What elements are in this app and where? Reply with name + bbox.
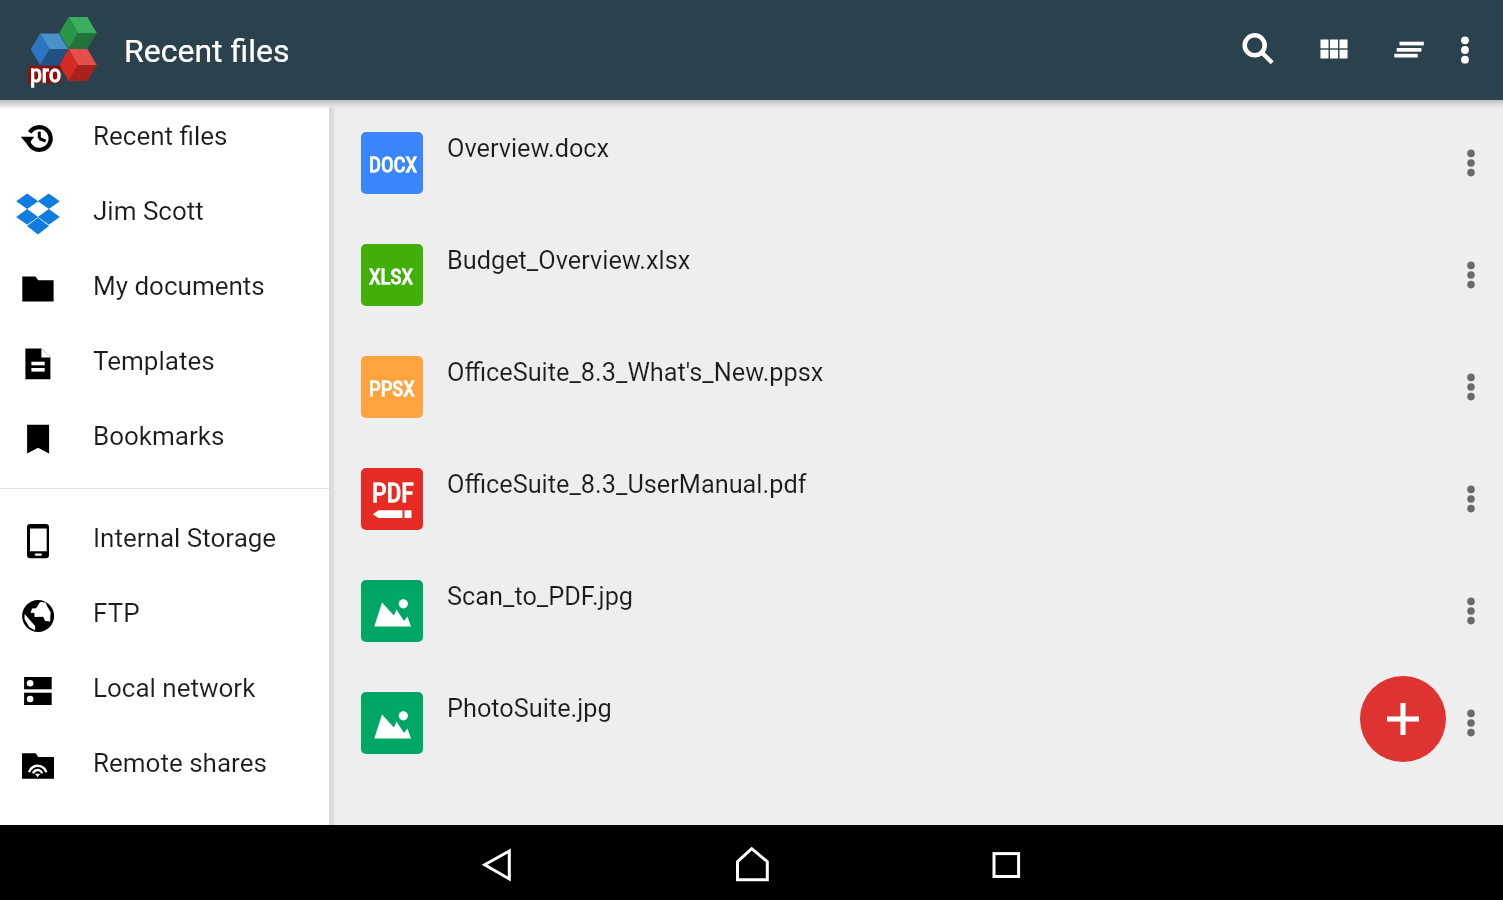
staticText: OfficeSuite_8.3_What's_New.ppsx (447, 358, 824, 388)
staticText: XLSX (369, 265, 414, 290)
staticText: Remote shares (93, 748, 267, 778)
staticText: Scan_to_PDF.jpg (447, 582, 634, 612)
staticText: Internal Storage (93, 523, 277, 553)
button[interactable]: Recent files (0, 101, 329, 176)
staticText: Budget_Overview.xlsx (447, 246, 691, 276)
button[interactable]: OfficeSuite Pro (26, 13, 100, 87)
button[interactable]: More options (1441, 581, 1501, 641)
button[interactable]: Back (467, 825, 527, 885)
button[interactable]: More options (1441, 357, 1501, 417)
staticText: Recent files (93, 121, 228, 151)
button[interactable]: More options (1441, 245, 1501, 305)
button[interactable]: PPSX (329, 331, 1503, 443)
button[interactable]: Scan_to_PDF.jpg (329, 555, 1503, 667)
staticText: Overview.docx (447, 134, 610, 164)
button[interactable]: Recent apps (976, 834, 1036, 894)
staticText: Local network (93, 673, 256, 703)
staticText: pro (30, 60, 61, 88)
button[interactable]: PhotoSuite.jpg (329, 667, 1503, 779)
button[interactable]: More options (1441, 693, 1501, 753)
staticText: PDF (372, 478, 414, 508)
button[interactable]: Templates (0, 326, 329, 401)
button[interactable]: My documents (0, 251, 329, 326)
button[interactable]: Create new file (1360, 676, 1446, 762)
button[interactable]: More options (1441, 469, 1501, 529)
staticText: Bookmarks (93, 421, 225, 451)
button[interactable]: Search (1225, 16, 1285, 76)
button[interactable]: More options (1435, 20, 1495, 80)
button[interactable]: Local network (0, 653, 329, 728)
button[interactable]: Home (722, 825, 782, 885)
button[interactable]: Bookmarks (0, 401, 329, 476)
staticText: Jim Scott (93, 196, 204, 226)
button[interactable]: DOCX (329, 107, 1503, 219)
staticText: Templates (93, 346, 215, 376)
staticText: DOCX (369, 153, 418, 178)
button[interactable]: Jim Scott (0, 176, 329, 251)
button[interactable]: XLSX (329, 219, 1503, 331)
button[interactable]: Recent files (124, 32, 290, 70)
button[interactable]: Remote shares (0, 728, 329, 803)
staticText: FTP (93, 598, 140, 628)
button[interactable]: PDF (329, 443, 1503, 555)
staticText: OfficeSuite_8.3_UserManual.pdf (447, 470, 807, 500)
button[interactable]: More options (1441, 133, 1501, 193)
staticText: PhotoSuite.jpg (447, 694, 612, 724)
button[interactable]: FTP (0, 578, 329, 653)
button[interactable]: Grid view (1304, 19, 1364, 79)
staticText: Recent files (124, 32, 290, 70)
staticText: My documents (93, 271, 265, 301)
button[interactable]: Internal Storage (0, 503, 329, 578)
staticText: PPSX (369, 377, 415, 402)
button[interactable]: Sort (1379, 20, 1439, 80)
